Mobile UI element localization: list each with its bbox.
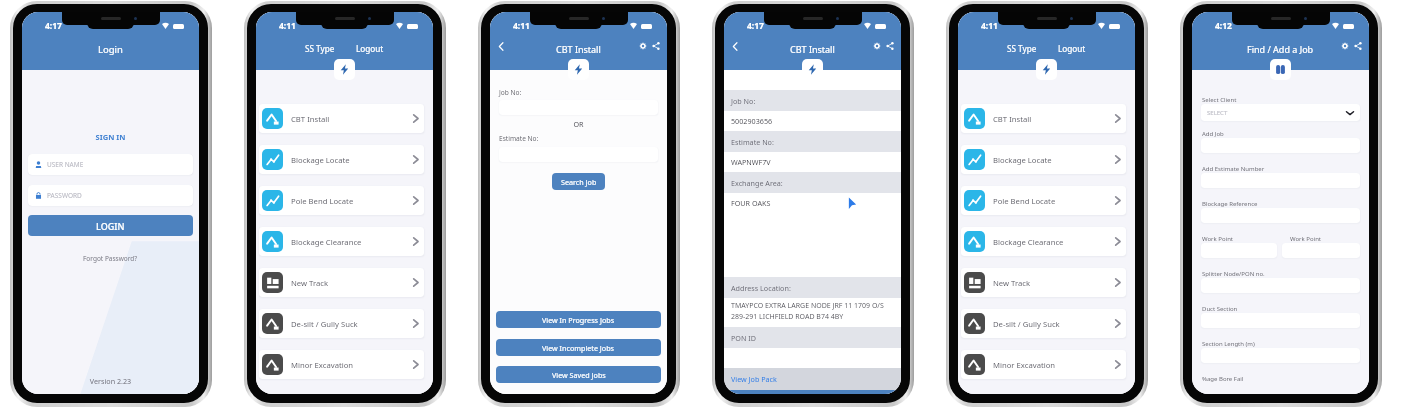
staticText: View Saved Jobs xyxy=(552,370,606,380)
staticText: New Track xyxy=(291,278,329,288)
staticText: Login xyxy=(98,43,123,56)
staticText: View In Progress Jobs xyxy=(542,315,615,325)
staticText: Pole Bend Locate xyxy=(291,196,354,206)
staticText: De-silt / Gully Suck xyxy=(291,319,358,329)
staticText: 4:11 xyxy=(513,20,530,32)
staticText: Exchange Area: xyxy=(731,178,783,188)
staticText: Find / Add a Job xyxy=(1247,43,1314,55)
button[interactable]: CBT Install xyxy=(256,104,433,133)
staticText: 5002903656 xyxy=(731,116,773,126)
staticText: LOGIN xyxy=(96,220,125,232)
button[interactable]: View Job Pack xyxy=(731,374,777,384)
button[interactable]: Blockage Locate xyxy=(256,145,433,174)
staticText: 4:11 xyxy=(981,20,998,32)
staticText: 4:12 xyxy=(1215,20,1232,32)
button[interactable]: Blockage Clearance xyxy=(958,227,1135,256)
staticText: Address Location: xyxy=(731,283,791,293)
staticText: Add Estimate Number xyxy=(1202,165,1265,173)
staticText: Job No: xyxy=(731,96,756,106)
button[interactable]: Blockage Clearance xyxy=(256,227,433,256)
staticText: WAPNWF7V xyxy=(731,157,771,167)
staticText: SIGN IN xyxy=(22,132,199,142)
button[interactable]: Search Job xyxy=(552,173,605,190)
button[interactable]: SS Type xyxy=(1007,43,1037,54)
button[interactable]: Pole Bend Locate xyxy=(256,186,433,215)
staticText: %age Bore Fail xyxy=(1202,375,1244,383)
button[interactable]: New Track xyxy=(256,268,433,297)
staticText: SELECT xyxy=(1207,109,1228,117)
button[interactable]: Share xyxy=(886,42,894,50)
button[interactable]: SS Type xyxy=(305,43,335,54)
button[interactable]: Settings xyxy=(873,42,881,50)
button[interactable]: Minor Excavation xyxy=(958,350,1135,379)
staticText: CBT Install xyxy=(790,43,835,55)
button[interactable]: Blockage Locate xyxy=(958,145,1135,174)
staticText: Blockage Clearance xyxy=(291,237,362,247)
staticText: OR xyxy=(490,119,667,129)
staticText: Splitter Node/PON no. xyxy=(1202,270,1265,278)
staticText: Blockage Reference xyxy=(1202,200,1258,208)
staticText: TMAYPCO EXTRA LARGE NODE JRF 11 1709 O/S… xyxy=(731,301,894,321)
staticText: CBT Install xyxy=(993,114,1032,124)
staticText: 4:11 xyxy=(279,20,296,32)
button[interactable]: New Track xyxy=(958,268,1135,297)
button[interactable]: Share xyxy=(652,42,660,50)
staticText: Blockage Locate xyxy=(993,155,1052,165)
staticText: Blockage Locate xyxy=(291,155,350,165)
staticText: View Incomplete Jobs xyxy=(542,343,615,353)
staticText: Version 2.23 xyxy=(22,376,199,386)
button[interactable]: PASSWORD xyxy=(28,185,193,206)
staticText: New Track xyxy=(993,278,1031,288)
button[interactable]: Logout xyxy=(1058,43,1086,54)
button[interactable]: LOGIN xyxy=(28,215,193,236)
button[interactable]: CBT Install xyxy=(958,104,1135,133)
staticText: Blockage Clearance xyxy=(993,237,1064,247)
button[interactable]: Back xyxy=(731,42,740,51)
staticText: Select Client xyxy=(1202,96,1237,104)
button[interactable]: View Incomplete Jobs xyxy=(496,339,661,356)
button[interactable]: Share xyxy=(1354,42,1362,50)
button[interactable]: Pole Bend Locate xyxy=(958,186,1135,215)
button[interactable]: USER NAME xyxy=(28,154,193,175)
staticText: Estimate No: xyxy=(499,134,539,143)
staticText: Add Job xyxy=(1202,130,1224,138)
staticText: Estimate No: xyxy=(731,137,774,147)
staticText: Job No: xyxy=(499,88,522,97)
button[interactable]: Settings xyxy=(639,42,647,50)
button[interactable]: Logout xyxy=(356,43,384,54)
button[interactable]: Minor Excavation xyxy=(256,350,433,379)
staticText: Duct Section xyxy=(1202,305,1238,313)
button[interactable]: De-silt / Gully Suck xyxy=(256,309,433,338)
button[interactable]: Back xyxy=(497,42,506,51)
button[interactable]: Settings xyxy=(1341,42,1349,50)
staticText: 4:17 xyxy=(45,20,62,32)
button[interactable]: De-silt / Gully Suck xyxy=(958,309,1135,338)
staticText: CBT Install xyxy=(556,43,601,55)
button[interactable]: Forgot Password? xyxy=(22,254,199,263)
button[interactable]: View Saved Jobs xyxy=(496,366,661,383)
staticText: PASSWORD xyxy=(47,191,82,200)
staticText: Pole Bend Locate xyxy=(993,196,1056,206)
staticText: PON ID xyxy=(731,333,756,343)
staticText: Forgot Password? xyxy=(83,254,138,263)
staticText: Minor Excavation xyxy=(291,360,354,370)
staticText: Work Point xyxy=(1202,235,1234,243)
staticText: Work Point xyxy=(1290,235,1322,243)
staticText: Section Length (m) xyxy=(1202,340,1255,348)
button[interactable]: View In Progress Jobs xyxy=(496,311,661,328)
button[interactable]: SELECT xyxy=(1201,104,1360,121)
staticText: 4:17 xyxy=(747,20,764,32)
staticText: CBT Install xyxy=(291,114,330,124)
staticText: FOUR OAKS xyxy=(731,198,771,208)
staticText: De-silt / Gully Suck xyxy=(993,319,1060,329)
